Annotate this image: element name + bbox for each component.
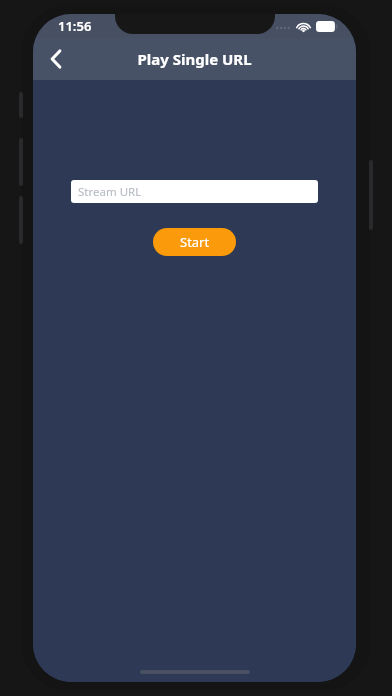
button[interactable]: Stream URL	[71, 180, 318, 203]
staticText: Stream URL	[78, 184, 142, 200]
staticText: Start	[180, 233, 210, 251]
staticText: 11:56	[58, 17, 92, 35]
staticText: Play Single URL	[137, 49, 252, 69]
button[interactable]: Back	[33, 38, 79, 80]
button[interactable]: Start	[153, 228, 236, 256]
